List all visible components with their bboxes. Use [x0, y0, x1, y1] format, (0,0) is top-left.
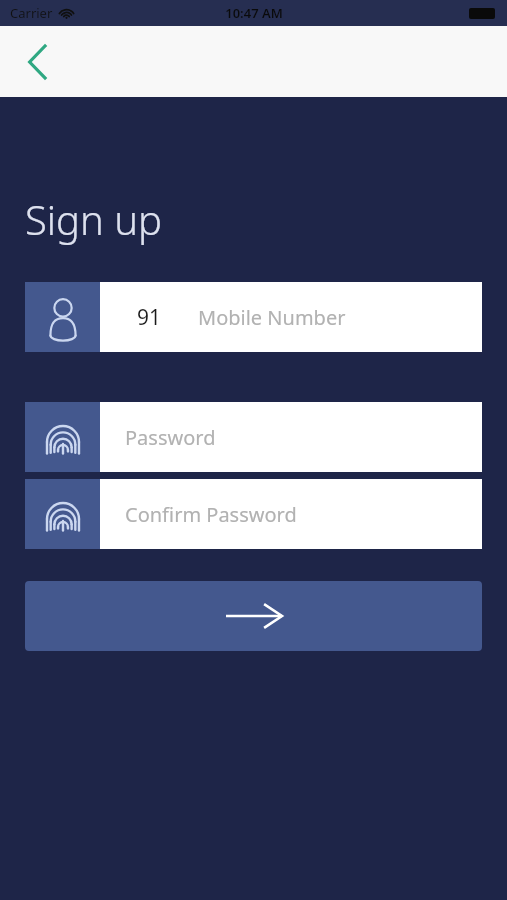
button[interactable]: Password [25, 402, 482, 472]
staticText: Confirm Password [125, 501, 297, 528]
button[interactable]: Confirm Password [25, 479, 482, 549]
button[interactable]: 91 [25, 282, 482, 352]
staticText: 91 [137, 303, 162, 332]
staticText: Carrier [10, 4, 53, 22]
staticText: Mobile Number [198, 304, 346, 331]
button[interactable]: Back [12, 36, 64, 88]
staticText: Sign up [25, 192, 163, 246]
button[interactable]: Continue [25, 581, 482, 651]
staticText: 10:47 AM [225, 4, 283, 22]
staticText: Password [125, 424, 216, 451]
